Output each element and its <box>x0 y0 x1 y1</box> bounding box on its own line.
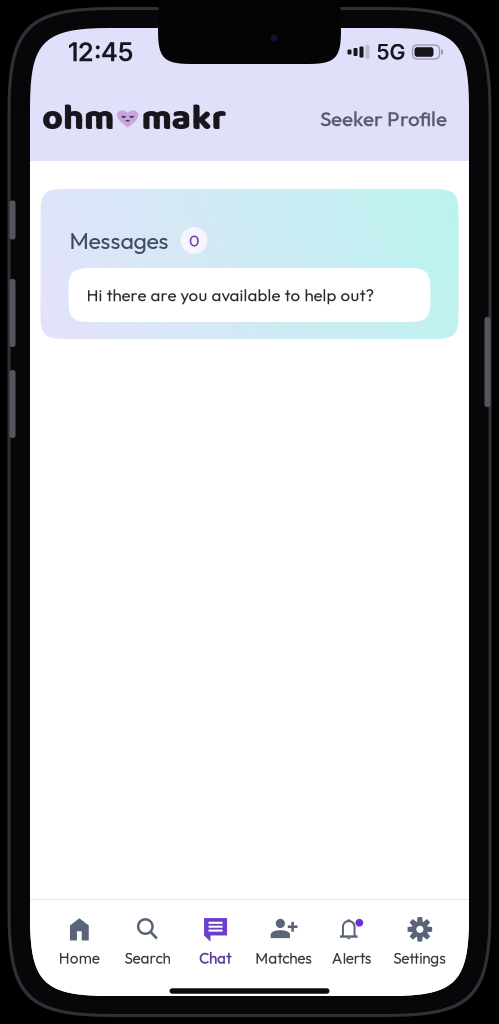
staticText: Seeker Profile <box>320 105 447 132</box>
staticText: 12:45 <box>68 37 133 67</box>
button[interactable]: Seeker Profile <box>310 99 457 138</box>
staticText: makr <box>141 90 226 147</box>
staticText: 0 <box>189 230 199 251</box>
button[interactable]: ohm makr home <box>34 90 234 147</box>
staticText: Alerts <box>332 948 372 968</box>
button[interactable]: Alerts <box>318 914 386 970</box>
button[interactable]: Settings <box>386 914 454 970</box>
button[interactable]: Chat <box>181 914 250 970</box>
button[interactable]: Hi there are you available to help out? <box>68 268 430 322</box>
staticText: Settings <box>393 948 446 968</box>
staticText: Chat <box>199 948 232 968</box>
staticText: Hi there are you available to help out? <box>86 284 374 306</box>
button[interactable]: Search <box>113 914 181 970</box>
staticText: 5G <box>376 39 405 65</box>
staticText: Home <box>59 948 100 968</box>
staticText: Matches <box>255 948 312 968</box>
button[interactable]: Matches <box>250 914 318 970</box>
staticText: Messages <box>69 226 168 255</box>
staticText: ohm <box>42 90 114 147</box>
button[interactable]: Home <box>45 914 113 970</box>
staticText: Search <box>124 948 170 968</box>
